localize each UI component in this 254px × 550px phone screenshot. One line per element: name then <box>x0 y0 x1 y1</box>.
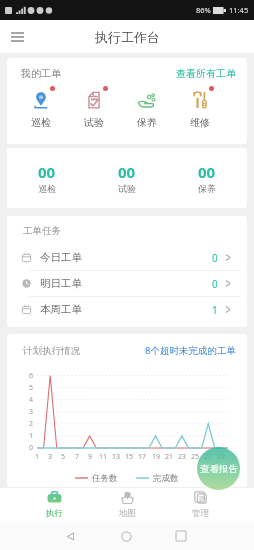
staticText: 维修 <box>190 116 210 129</box>
staticText: 执行 <box>46 508 63 519</box>
button[interactable]: Home <box>116 526 136 546</box>
staticText: 25 <box>191 452 200 462</box>
staticText: 00 <box>198 162 216 182</box>
staticText: 1 <box>29 431 34 441</box>
button[interactable]: 查看报告 <box>197 447 240 490</box>
staticText: 6 <box>29 371 34 381</box>
staticText: 我的工单 <box>21 67 61 80</box>
staticText: 3 <box>29 407 34 417</box>
staticText: 明日工单 <box>40 277 82 290</box>
button[interactable]: 巡检 <box>14 85 67 129</box>
staticText: 0 <box>29 443 34 453</box>
staticText: 19 <box>152 452 161 462</box>
staticText: 4 <box>29 395 34 405</box>
staticText: 86% <box>196 5 211 15</box>
staticText: 29 <box>217 452 226 462</box>
staticText: 保养 <box>137 116 157 129</box>
staticText: 试验 <box>84 116 104 129</box>
staticText: 21 <box>165 452 174 462</box>
button[interactable]: 保养 <box>120 85 173 129</box>
staticText: 巡检 <box>38 183 56 194</box>
staticText: 查看报告 <box>200 463 238 475</box>
staticText: 5 <box>61 452 66 462</box>
button[interactable]: 执行 <box>17 488 91 521</box>
button[interactable]: 管理 <box>164 488 237 521</box>
staticText: 工单任务 <box>23 225 61 237</box>
staticText: 15 <box>125 452 134 462</box>
button[interactable]: Recents <box>171 526 191 546</box>
staticText: 任务数 <box>92 473 118 484</box>
staticText: 计划执行情况 <box>23 345 80 357</box>
button[interactable]: Menu <box>4 24 30 50</box>
staticText: 9 <box>88 452 93 462</box>
staticText: 5 <box>29 383 34 393</box>
staticText: 本周工单 <box>40 303 82 316</box>
button[interactable]: 查看所有工单 <box>176 67 236 80</box>
button[interactable]: 今日工单 <box>7 245 247 270</box>
staticText: 13 <box>112 452 121 462</box>
staticText: 00 <box>38 162 56 182</box>
staticText: 1 <box>35 452 40 462</box>
button[interactable]: Back <box>60 526 80 546</box>
staticText: 保养 <box>198 183 216 194</box>
staticText: 管理 <box>192 508 209 519</box>
staticText: 23 <box>178 452 187 462</box>
button[interactable]: 试验 <box>67 85 120 129</box>
button[interactable]: 本周工单 <box>7 297 247 322</box>
staticText: 17 <box>138 452 147 462</box>
staticText: 试验 <box>118 183 136 194</box>
staticText: 地图 <box>119 508 136 519</box>
staticText: 27 <box>204 452 213 462</box>
staticText: 3 <box>48 452 53 462</box>
staticText: 今日工单 <box>40 251 82 264</box>
button[interactable]: 地图 <box>91 488 164 521</box>
staticText: 巡检 <box>31 116 51 129</box>
staticText: 00 <box>118 162 136 182</box>
button[interactable]: 明日工单 <box>7 271 247 296</box>
button[interactable]: 00 <box>87 162 167 194</box>
button[interactable]: 00 <box>7 162 87 194</box>
staticText: 11:45 <box>229 5 249 15</box>
button[interactable]: 维修 <box>173 85 226 129</box>
button[interactable]: 8个超时未完成的工单 <box>145 344 236 357</box>
staticText: 11 <box>99 452 108 462</box>
staticText: 1 <box>212 303 218 317</box>
button[interactable]: 00 <box>167 162 247 194</box>
staticText: 7 <box>75 452 80 462</box>
staticText: 0 <box>212 251 218 265</box>
staticText: 0 <box>212 277 218 291</box>
staticText: 2 <box>29 419 34 429</box>
staticText: 完成数 <box>153 473 179 484</box>
staticText: 执行工作台 <box>95 29 160 45</box>
